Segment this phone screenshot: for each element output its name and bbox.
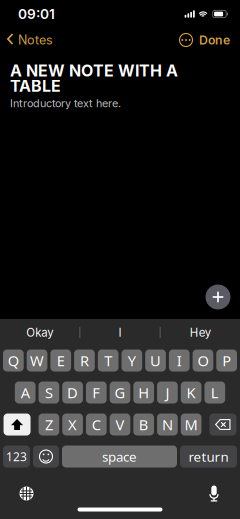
button[interactable]: X — [62, 413, 83, 435]
button[interactable]: E — [50, 349, 71, 371]
button[interactable]: Hey — [161, 319, 240, 345]
button[interactable]: B — [133, 413, 154, 435]
staticText: X — [68, 415, 77, 434]
staticText: D — [67, 383, 78, 402]
button[interactable]: U — [145, 349, 166, 371]
staticText: A — [21, 383, 30, 402]
button[interactable]: P — [216, 349, 237, 371]
staticText: F — [92, 383, 100, 402]
staticText: M — [185, 415, 198, 434]
staticText: A NEW NOTE WITH A TABLE — [10, 61, 178, 96]
staticText: N — [162, 415, 173, 434]
staticText: space — [102, 448, 137, 465]
button[interactable]: V — [110, 413, 130, 435]
button[interactable]: Shift — [4, 413, 31, 435]
staticText: E — [57, 351, 65, 370]
staticText: Hey — [190, 326, 211, 339]
button[interactable]: Emoji — [33, 445, 59, 467]
staticText: Y — [128, 351, 136, 370]
button[interactable]: M — [181, 413, 201, 435]
staticText: 09:01 — [18, 6, 55, 22]
staticText: P — [222, 351, 231, 370]
staticText: R — [80, 351, 89, 370]
staticText: W — [30, 351, 44, 370]
staticText: Q — [8, 351, 19, 370]
staticText: Introductory text here. — [10, 97, 121, 110]
button[interactable]: T — [98, 349, 118, 371]
button[interactable]: Switch keyboard — [11, 480, 41, 506]
button[interactable]: D — [62, 381, 83, 403]
button[interactable]: Okay — [0, 319, 79, 345]
button[interactable]: C — [86, 413, 107, 435]
button[interactable]: G — [110, 381, 130, 403]
button[interactable]: R — [74, 349, 95, 371]
staticText: Okay — [26, 326, 53, 339]
staticText: V — [115, 415, 124, 434]
staticText: G — [114, 383, 125, 402]
button[interactable]: I — [169, 349, 190, 371]
button[interactable]: L — [204, 381, 225, 403]
button[interactable]: 123 — [3, 445, 30, 467]
staticText: return — [188, 448, 228, 465]
button[interactable]: space — [62, 445, 177, 467]
staticText: J — [165, 383, 169, 402]
staticText: C — [92, 415, 101, 434]
button[interactable]: Add — [201, 280, 235, 314]
button[interactable]: Notes — [0, 28, 59, 52]
button[interactable]: H — [133, 381, 154, 403]
staticText: Notes — [18, 32, 53, 48]
staticText: I — [118, 326, 121, 339]
staticText: S — [45, 383, 53, 402]
staticText: O — [197, 351, 208, 370]
button[interactable]: N — [157, 413, 178, 435]
button[interactable]: O — [193, 349, 213, 371]
button[interactable]: S — [39, 381, 59, 403]
staticText: 123 — [6, 448, 27, 464]
button[interactable]: A — [15, 381, 36, 403]
staticText: T — [104, 351, 112, 370]
staticText: U — [150, 351, 161, 370]
staticText: Z — [45, 415, 53, 434]
staticText: I — [177, 351, 182, 370]
button[interactable]: Dictate — [199, 480, 229, 506]
button[interactable]: Delete — [209, 413, 236, 435]
staticText: H — [138, 383, 149, 402]
staticText: L — [211, 383, 219, 402]
button[interactable]: More — [178, 30, 194, 50]
button[interactable]: return — [180, 445, 237, 467]
staticText: K — [187, 383, 196, 402]
button[interactable]: Y — [121, 349, 142, 371]
button[interactable]: Done — [199, 28, 230, 52]
button[interactable]: Z — [39, 413, 59, 435]
staticText: B — [139, 415, 149, 434]
button[interactable]: Q — [3, 349, 24, 371]
button[interactable]: J — [157, 381, 178, 403]
button[interactable]: W — [27, 349, 47, 371]
staticText: Done — [199, 33, 230, 47]
button[interactable]: K — [181, 381, 201, 403]
button[interactable]: F — [86, 381, 107, 403]
button[interactable]: I — [80, 319, 160, 345]
